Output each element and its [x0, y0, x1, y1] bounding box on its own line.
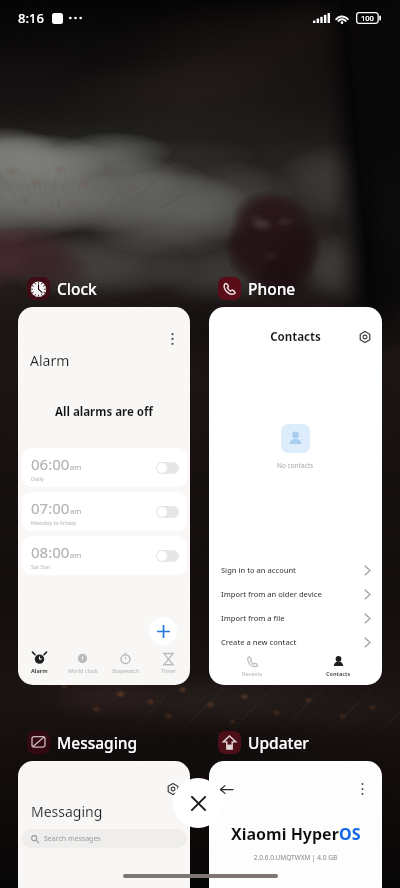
staticText: Sign in to an account	[221, 565, 296, 575]
staticText: 08:00	[31, 542, 70, 562]
button[interactable]: Phone	[218, 276, 296, 300]
staticText: Stopwatch	[112, 667, 140, 674]
staticText: Messaging	[31, 802, 103, 821]
staticText: OS	[339, 823, 361, 845]
staticText: 06:00	[31, 454, 70, 474]
staticText: Import from an older device	[221, 589, 322, 599]
button[interactable]: Recents	[209, 655, 295, 677]
staticText: World clock	[68, 667, 98, 674]
button[interactable]: 06:00	[22, 448, 187, 487]
button[interactable]: Import from an older device	[209, 583, 382, 605]
button[interactable]: Updater	[218, 730, 309, 754]
staticText: Import from a file	[221, 613, 285, 623]
staticText: Messaging	[57, 732, 138, 753]
button[interactable]: Back	[218, 781, 235, 798]
staticText: No contacts	[277, 461, 314, 470]
button[interactable]: Close all	[173, 778, 223, 828]
staticText: 2.0.6.0.UMQTWXM | 4.0 GB	[209, 853, 382, 862]
staticText: Sat Sun	[31, 563, 51, 570]
staticText: Monday to Friday	[31, 519, 76, 526]
button[interactable]: World clock	[61, 652, 104, 674]
staticText: Updater	[248, 732, 309, 753]
button[interactable]: Import from a file	[209, 607, 382, 629]
staticText: Xiaomi Hyper	[231, 823, 339, 845]
staticText: 07:00	[31, 498, 70, 518]
button[interactable]	[156, 550, 179, 562]
button[interactable]: Create a new contact	[209, 631, 382, 653]
staticText: 8:16	[18, 9, 44, 27]
button[interactable]	[156, 462, 179, 474]
button[interactable]: Contacts	[295, 655, 382, 677]
staticText: Timer	[161, 667, 176, 674]
button[interactable]: Add alarm	[149, 617, 177, 645]
staticText: Phone	[248, 278, 296, 299]
button[interactable]: Stopwatch	[104, 652, 147, 674]
staticText: Daily	[31, 475, 44, 482]
button[interactable]: Contacts	[209, 307, 382, 685]
button[interactable]: Settings	[165, 781, 181, 797]
button[interactable]: Timer	[147, 652, 190, 674]
button[interactable]: Settings	[18, 761, 190, 888]
staticText: am	[70, 506, 82, 516]
button[interactable]: Alarm	[18, 307, 190, 685]
staticText: Recents	[242, 670, 263, 677]
staticText: am	[70, 462, 82, 472]
button[interactable]: Settings	[357, 329, 373, 345]
staticText: Alarm	[30, 351, 70, 370]
button[interactable]: 08:00	[22, 536, 187, 575]
button[interactable]: Back	[209, 761, 382, 888]
staticText: Contacts	[209, 329, 382, 345]
staticText: Alarm	[31, 667, 48, 674]
button[interactable]	[156, 506, 179, 518]
staticText: Contacts	[326, 670, 351, 677]
staticText: am	[70, 550, 82, 560]
staticText: Create a new contact	[221, 637, 297, 647]
staticText: Search messages	[44, 834, 101, 844]
button[interactable]: Clock	[27, 276, 97, 300]
button[interactable]: Sign in to an account	[209, 559, 382, 581]
staticText: Clock	[57, 278, 97, 299]
button[interactable]: Search messages	[22, 829, 187, 848]
button[interactable]: Alarm	[18, 652, 61, 674]
button[interactable]: 07:00	[22, 492, 187, 531]
staticText: All alarms are off	[18, 404, 190, 420]
staticText: 100	[361, 13, 374, 23]
button[interactable]: Messaging	[27, 730, 138, 754]
